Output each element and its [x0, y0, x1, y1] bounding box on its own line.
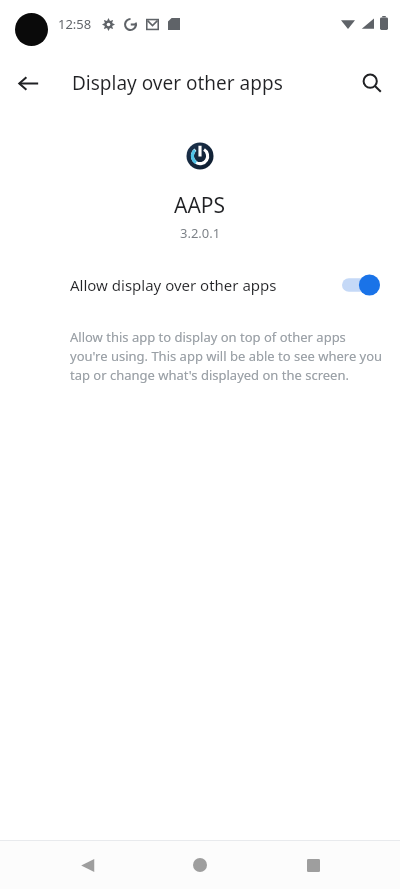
button[interactable]: Home: [174, 841, 226, 889]
staticText: 12:58: [58, 15, 92, 33]
staticText: 3.2.0.1: [180, 224, 221, 242]
staticText: Allow this app to display on top of othe…: [70, 328, 384, 384]
staticText: Display over other apps: [72, 70, 283, 96]
button[interactable]: Search: [352, 63, 392, 103]
button[interactable]: Back: [8, 63, 48, 103]
button[interactable]: Recent apps: [287, 841, 339, 889]
button[interactable]: Allow display over other apps: [0, 268, 400, 302]
staticText: Allow display over other apps: [70, 275, 277, 295]
button[interactable]: Back: [61, 841, 113, 889]
staticText: AAPS: [174, 191, 226, 220]
